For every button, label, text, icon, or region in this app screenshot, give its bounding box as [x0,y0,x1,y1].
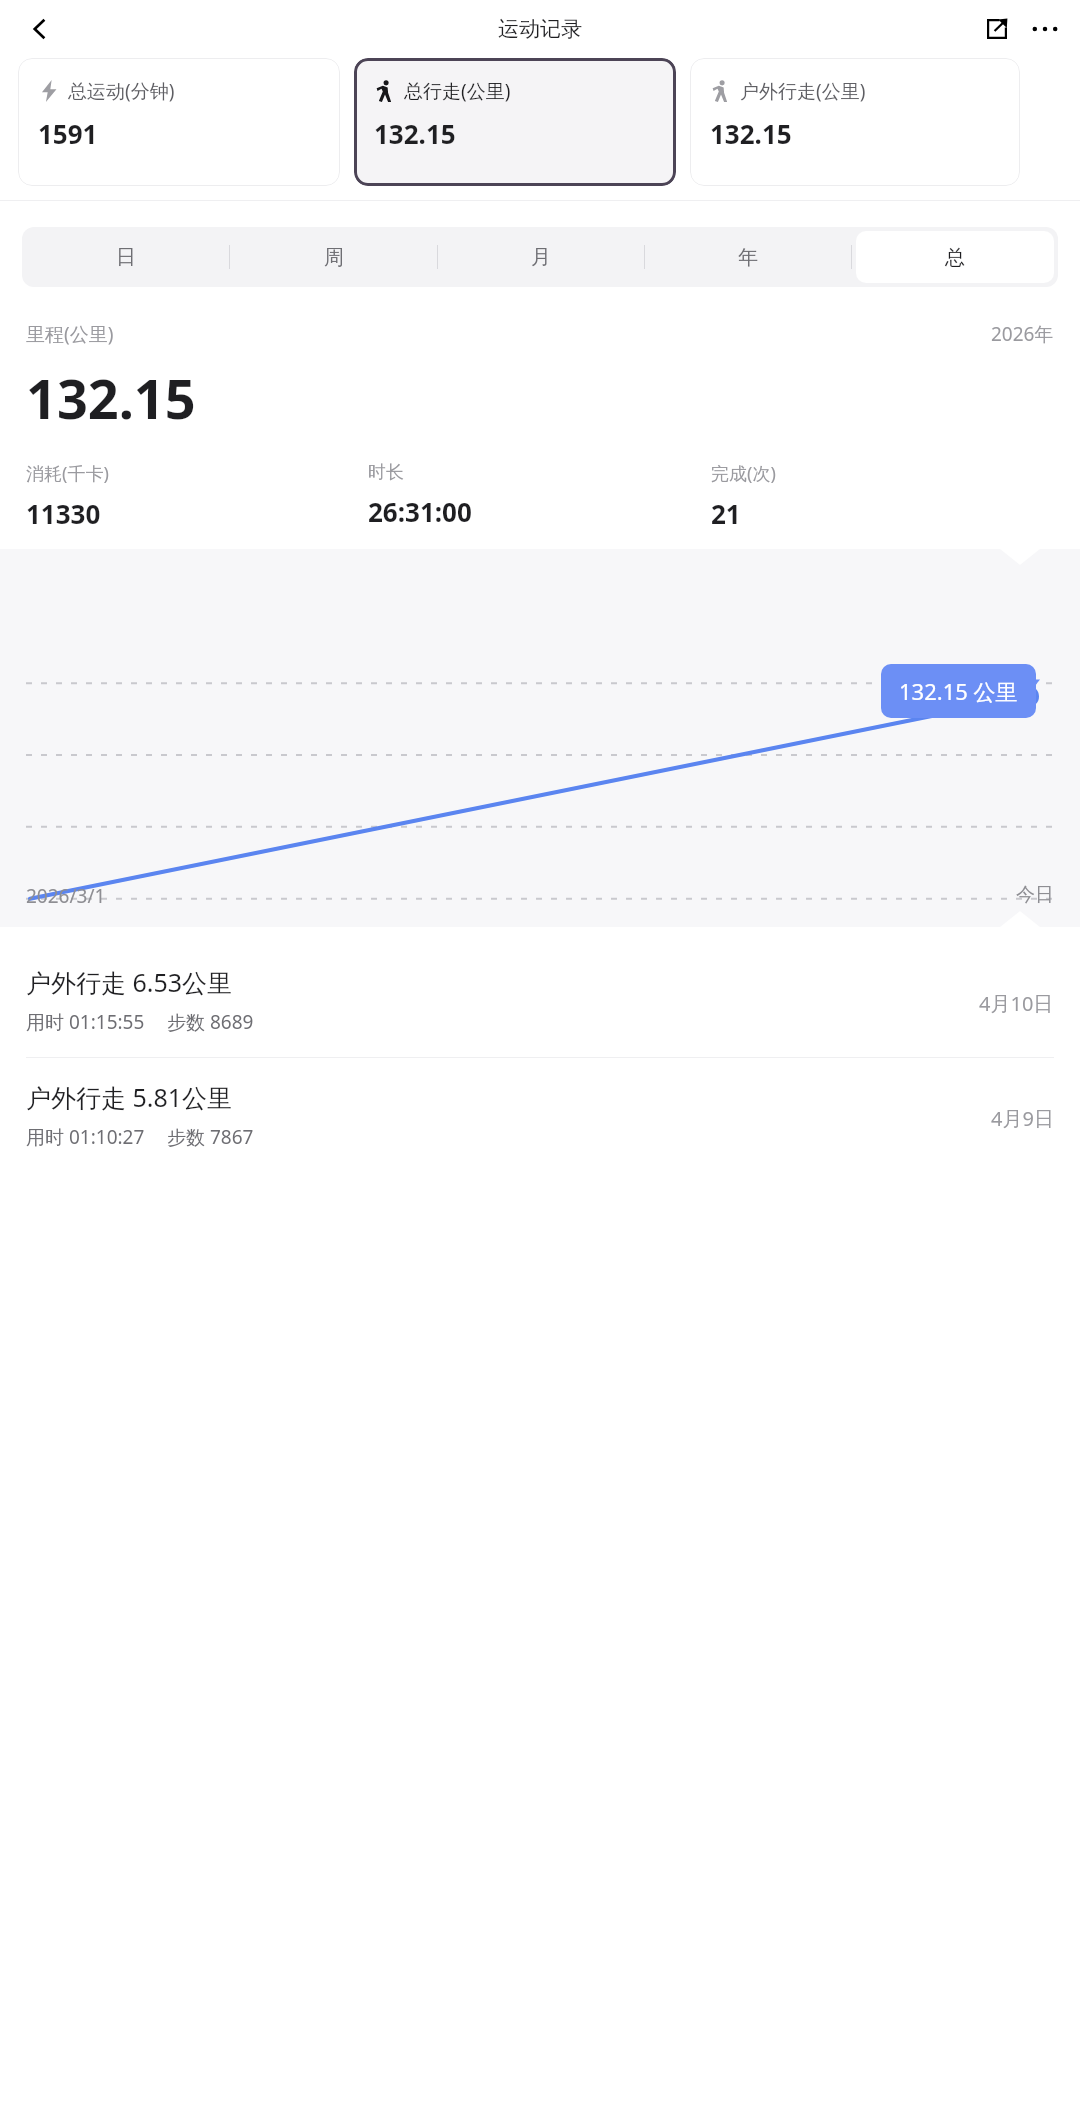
button[interactable]: 户外行走 5.81公里 [0,1058,1080,1172]
staticText: 总 [945,245,965,270]
button[interactable]: 日 [22,227,229,287]
staticText: 4月10日 [979,990,1054,1017]
staticText: 4月9日 [991,1105,1054,1132]
staticText: 时长 [368,461,404,484]
button[interactable]: More options [1020,4,1070,54]
button[interactable]: 年 [645,227,851,287]
staticText: 2026年 [991,321,1054,347]
staticText: 户外行走 6.53公里 [26,965,233,999]
staticText: 26:31:00 [368,494,472,529]
staticText: 总运动(分钟) [68,78,175,104]
staticText: 户外行走(公里) [740,78,866,104]
staticText: 户外行走 5.81公里 [26,1080,233,1114]
button[interactable]: 总行走(公里) [354,58,676,186]
staticText: 2026/3/1 [26,883,106,909]
staticText: 运动记录 [498,16,582,42]
staticText: 132.15 [26,361,196,435]
staticText: 132.15 [710,116,792,151]
button[interactable]: 总 [856,231,1054,283]
staticText: 步数 8689 [167,1009,254,1035]
staticText: 日 [116,245,136,270]
staticText: 1591 [38,116,98,151]
staticText: 年 [738,245,758,270]
button[interactable]: 周 [230,227,437,287]
button[interactable]: 户外行走 6.53公里 [0,943,1080,1057]
staticText: 21 [711,496,741,531]
staticText: 总行走(公里) [404,78,511,104]
staticText: 用时 01:15:55 [26,1009,145,1035]
staticText: 132.15 [374,116,456,151]
button[interactable]: 户外行走(公里) [690,58,1020,186]
staticText: 用时 01:10:27 [26,1124,145,1150]
staticText: 消耗(千卡) [26,461,109,486]
staticText: 周 [324,245,344,270]
staticText: 完成(次) [711,461,776,486]
staticText: 月 [531,245,551,270]
button[interactable]: Back [18,7,62,51]
staticText: 里程(公里) [26,321,114,347]
staticText: 步数 7867 [167,1124,254,1150]
staticText: 11330 [26,496,101,531]
staticText: 今日 [1016,883,1054,907]
staticText: 132.15 公里 [899,676,1018,706]
button[interactable]: 月 [438,227,644,287]
button[interactable]: Share [974,6,1020,52]
button[interactable]: 总运动(分钟) [18,58,340,186]
